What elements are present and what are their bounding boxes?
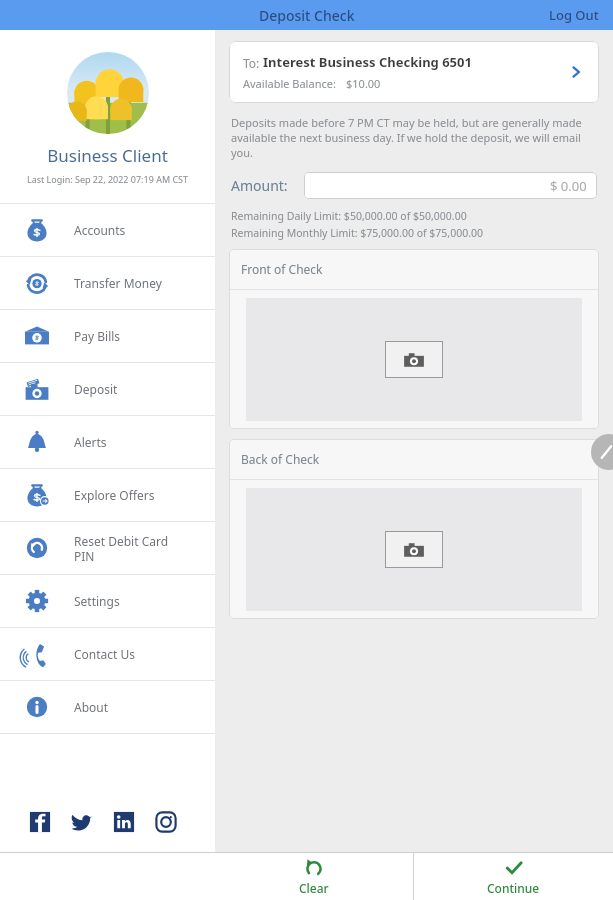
staticText: Deposit Check xyxy=(259,6,355,25)
staticText: Last Login: Sep 22, 2022 07:19 AM CST xyxy=(22,173,193,185)
staticText: Remaining Daily Limit: $50,000.00 of $50… xyxy=(231,209,467,223)
button[interactable]: Capture Back of Check xyxy=(246,488,582,611)
staticText: Transfer Money xyxy=(74,275,162,291)
staticText: Back of Check xyxy=(241,451,320,467)
staticText: Deposit xyxy=(74,381,118,397)
staticText: Log Out xyxy=(549,6,599,24)
button[interactable]: Clear xyxy=(215,853,413,900)
staticText: Continue xyxy=(487,880,540,896)
button[interactable]: Twitter xyxy=(70,810,94,834)
staticText: Front of Check xyxy=(241,261,323,277)
button[interactable]: Reset Debit Card PIN xyxy=(0,522,215,574)
staticText: $10.00 xyxy=(346,76,381,91)
button[interactable]: Capture Front of Check xyxy=(246,298,582,421)
staticText: Interest Business Checking 6501 xyxy=(263,53,472,71)
button[interactable]: Facebook xyxy=(28,810,52,834)
staticText: $ 0.00 xyxy=(550,177,587,195)
button[interactable]: Explore Offers xyxy=(0,469,215,521)
staticText: Alerts xyxy=(74,434,107,450)
button[interactable]: To: xyxy=(229,41,599,103)
staticText: About xyxy=(74,699,109,715)
button[interactable]: Settings xyxy=(0,575,215,627)
staticText: Amount: xyxy=(231,176,288,195)
staticText: Remaining Monthly Limit: $75,000.00 of $… xyxy=(231,226,484,240)
button[interactable]: LinkedIn xyxy=(112,810,136,834)
staticText: Deposits made before 7 PM CT may be held… xyxy=(231,115,597,160)
button[interactable]: Transfer Money xyxy=(0,257,215,309)
button[interactable]: Continue xyxy=(414,853,613,900)
button[interactable]: Contact Us xyxy=(0,628,215,680)
button[interactable]: Open panel xyxy=(591,434,613,470)
button[interactable]: Log Out xyxy=(535,0,613,30)
staticText: Business Client xyxy=(0,144,215,167)
staticText: Pay Bills xyxy=(74,328,121,344)
staticText: Accounts xyxy=(74,222,126,238)
button[interactable]: Deposit xyxy=(0,363,215,415)
button[interactable]: Alerts xyxy=(0,416,215,468)
staticText: Clear xyxy=(299,880,329,896)
button[interactable]: Instagram xyxy=(154,810,178,834)
staticText: Reset Debit Card PIN xyxy=(74,533,169,564)
staticText: Available Balance: xyxy=(243,76,336,91)
staticText: Explore Offers xyxy=(74,487,155,503)
staticText: Contact Us xyxy=(74,646,136,662)
staticText: Settings xyxy=(74,593,120,609)
button[interactable]: $ 0.00 xyxy=(304,172,597,199)
staticText: To: xyxy=(243,55,263,71)
button[interactable]: Accounts xyxy=(0,204,215,256)
button[interactable]: About xyxy=(0,681,215,733)
button[interactable]: Pay Bills xyxy=(0,310,215,362)
